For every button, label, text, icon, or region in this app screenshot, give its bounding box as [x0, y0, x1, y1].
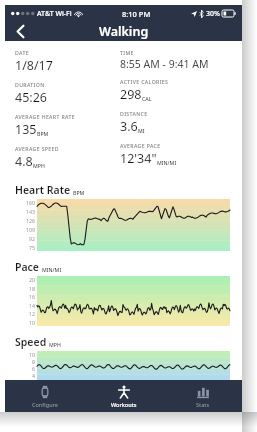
- staticText: 8: [32, 358, 35, 365]
- staticText: 18: [29, 285, 35, 292]
- button[interactable]: Back: [5, 22, 35, 41]
- staticText: AVERAGE PACE: [120, 142, 161, 149]
- button[interactable]: Workouts: [84, 380, 163, 412]
- staticText: Configure: [32, 401, 58, 408]
- staticText: 4.8: [15, 153, 33, 170]
- staticText: 160: [26, 199, 35, 206]
- staticText: DATE: [15, 49, 29, 56]
- staticText: MPH: [49, 341, 61, 348]
- staticText: 12: [29, 310, 35, 317]
- staticText: 298: [120, 86, 142, 103]
- staticText: 143: [26, 208, 35, 215]
- staticText: MI: [138, 127, 145, 134]
- staticText: 10: [29, 319, 35, 326]
- staticText: 30%: [206, 9, 220, 19]
- staticText: 4: [32, 372, 35, 379]
- staticText: MPH: [33, 162, 45, 169]
- staticText: ACTIVE CALORIES: [120, 78, 169, 85]
- staticText: 3.6: [120, 118, 138, 135]
- staticText: MIN/MI: [157, 159, 177, 166]
- button[interactable]: Stats: [163, 380, 242, 412]
- staticText: Speed: [15, 335, 47, 349]
- staticText: TIME: [120, 49, 134, 56]
- staticText: BPM: [73, 189, 85, 196]
- button[interactable]: Configure: [5, 380, 84, 412]
- staticText: 45:26: [15, 89, 47, 106]
- staticText: 6: [32, 365, 35, 372]
- staticText: Heart Rate: [15, 183, 71, 197]
- staticText: Stats: [196, 401, 210, 408]
- staticText: 16: [29, 293, 35, 300]
- staticText: 10: [29, 351, 35, 358]
- staticText: 1/8/17: [15, 57, 53, 74]
- staticText: Pace: [15, 260, 40, 274]
- staticText: 8:55 AM - 9:41 AM: [120, 57, 209, 71]
- staticText: Walking: [99, 23, 149, 40]
- staticText: DISTANCE: [120, 110, 148, 117]
- staticText: CAL: [142, 95, 152, 102]
- staticText: MIN/MI: [42, 266, 62, 273]
- staticText: 126: [26, 217, 35, 224]
- staticText: 12'34": [120, 150, 157, 167]
- staticText: AT&T Wi-Fi: [37, 9, 72, 19]
- staticText: Workouts: [111, 401, 137, 408]
- staticText: BPM: [37, 130, 49, 137]
- staticText: 14: [29, 302, 35, 309]
- staticText: 8:10 PM: [122, 9, 151, 19]
- staticText: AVERAGE SPEED: [15, 145, 59, 152]
- staticText: 92: [29, 235, 35, 242]
- staticText: DURATION: [15, 81, 45, 88]
- staticText: 20: [29, 276, 35, 283]
- staticText: 109: [26, 226, 35, 233]
- staticText: 135: [15, 121, 37, 138]
- staticText: AVERAGE HEART RATE: [15, 113, 75, 120]
- staticText: 75: [29, 244, 35, 251]
